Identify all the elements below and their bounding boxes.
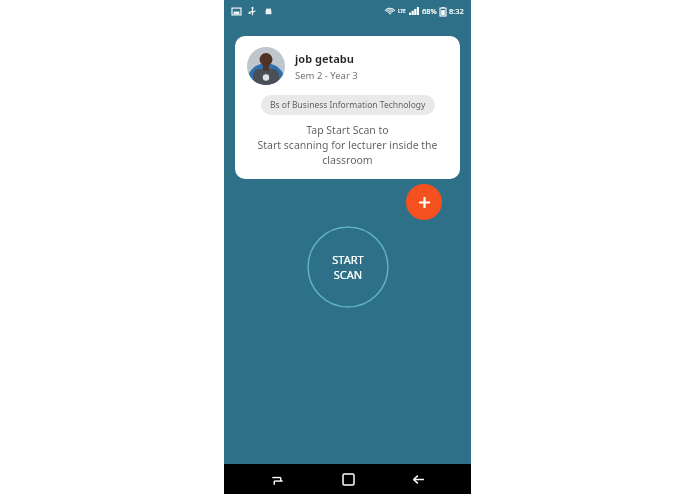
staticText: LTE [398, 8, 406, 14]
staticText: Tap Start Scan to Start scanning for lec… [243, 123, 452, 167]
staticText: Bs of Business Information Technology [270, 99, 426, 111]
staticText: 68% [422, 6, 437, 16]
staticText: START SCAN [332, 252, 364, 282]
button[interactable]: START SCAN [307, 226, 389, 308]
button[interactable]: Bs of Business Information Technology [261, 95, 435, 115]
button[interactable]: Home [331, 464, 365, 494]
button[interactable]: job getabu [235, 36, 460, 179]
button[interactable]: Recent apps [260, 464, 294, 494]
staticText: job getabu [295, 51, 354, 66]
staticText: Sem 2 - Year 3 [295, 69, 358, 82]
button[interactable]: Add [406, 184, 442, 220]
staticText: 8:32 [449, 6, 464, 16]
button[interactable]: Back [401, 464, 435, 494]
